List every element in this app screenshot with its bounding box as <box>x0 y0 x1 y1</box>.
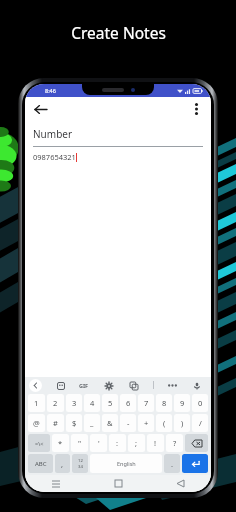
staticText: - <box>127 418 130 428</box>
button[interactable]: Collapse toolbar <box>29 379 42 392</box>
staticText: 0987654321 <box>33 152 76 162</box>
button[interactable]: - <box>120 414 136 432</box>
staticText: 8:46 <box>45 87 56 94</box>
staticText: # <box>53 418 58 428</box>
staticText: ? <box>173 438 177 448</box>
button[interactable]: Settings <box>103 380 114 391</box>
button[interactable]: , <box>55 454 70 473</box>
button[interactable]: 9 <box>174 394 190 412</box>
button[interactable]: @ <box>28 414 45 432</box>
staticText: ) <box>181 418 184 428</box>
staticText: ( <box>163 418 166 428</box>
button[interactable]: * <box>52 434 69 452</box>
staticText: 9 <box>180 398 185 408</box>
staticText: 3 <box>72 398 77 408</box>
button[interactable]: # <box>47 414 64 432</box>
button[interactable]: 6 <box>120 394 136 412</box>
staticText: Number <box>33 127 73 141</box>
button[interactable]: ' <box>90 434 107 452</box>
staticText: & <box>107 418 113 428</box>
button[interactable]: 7 <box>138 394 154 412</box>
staticText: @ <box>33 418 40 428</box>
button[interactable]: 1 <box>28 394 45 412</box>
button[interactable]: Backspace <box>185 434 208 452</box>
button[interactable]: + <box>138 414 154 432</box>
button[interactable]: Voice input <box>191 380 202 391</box>
button[interactable]: 0 <box>192 394 208 412</box>
button[interactable]: _ <box>84 414 100 432</box>
staticText: =\< <box>35 440 44 447</box>
staticText: 7 <box>144 398 149 408</box>
staticText: : <box>116 438 119 448</box>
staticText: $ <box>72 418 77 428</box>
staticText: 6 <box>126 398 131 408</box>
button[interactable]: 8 <box>156 394 172 412</box>
button[interactable]: ? <box>166 434 183 452</box>
button[interactable]: 4 <box>84 394 100 412</box>
staticText: _ <box>90 418 94 428</box>
button[interactable]: ABC <box>28 454 53 473</box>
staticText: ! <box>154 438 157 448</box>
button[interactable]: " <box>71 434 88 452</box>
button[interactable]: More options <box>186 99 206 119</box>
button[interactable]: English <box>90 454 162 473</box>
button[interactable]: ( <box>156 414 172 432</box>
button[interactable]: GIF <box>79 382 89 389</box>
button[interactable]: Stickers <box>55 380 66 391</box>
button[interactable]: Back <box>149 475 211 492</box>
staticText: 12 <box>78 458 83 464</box>
staticText: 8 <box>162 398 167 408</box>
staticText: ABC <box>35 460 47 468</box>
button[interactable]: ) <box>174 414 190 432</box>
staticText: 1 <box>34 398 39 408</box>
button[interactable]: ! <box>147 434 164 452</box>
button[interactable]: & <box>102 414 118 432</box>
staticText: + <box>144 418 149 428</box>
staticText: * <box>58 438 63 448</box>
button[interactable]: $ <box>66 414 82 432</box>
button[interactable]: Recents <box>25 475 87 492</box>
staticText: 0 <box>198 398 203 408</box>
staticText: ' <box>98 438 100 448</box>
staticText: / <box>199 418 202 428</box>
staticText: English <box>117 460 136 467</box>
staticText: 34 <box>78 464 83 470</box>
staticText: 5 <box>108 398 113 408</box>
staticText: GIF <box>79 382 89 389</box>
button[interactable]: ; <box>128 434 145 452</box>
staticText: Create Notes <box>71 22 166 43</box>
button[interactable]: Home <box>87 475 149 492</box>
staticText: ; <box>135 438 138 448</box>
button[interactable]: Numbers <box>72 454 88 473</box>
button[interactable]: Enter <box>182 454 208 473</box>
button[interactable]: More <box>168 384 177 387</box>
staticText: . <box>171 459 174 469</box>
staticText: 2 <box>53 398 58 408</box>
button[interactable]: . <box>164 454 180 473</box>
staticText: , <box>61 459 64 469</box>
button[interactable]: Back <box>30 99 50 119</box>
staticText: " <box>78 438 82 448</box>
staticText: 4 <box>90 398 95 408</box>
button[interactable]: / <box>192 414 208 432</box>
button[interactable]: Translate <box>128 380 139 391</box>
button[interactable]: 3 <box>66 394 82 412</box>
button[interactable]: =\< <box>28 434 50 452</box>
button[interactable]: : <box>109 434 126 452</box>
button[interactable]: 5 <box>102 394 118 412</box>
button[interactable]: 2 <box>47 394 64 412</box>
